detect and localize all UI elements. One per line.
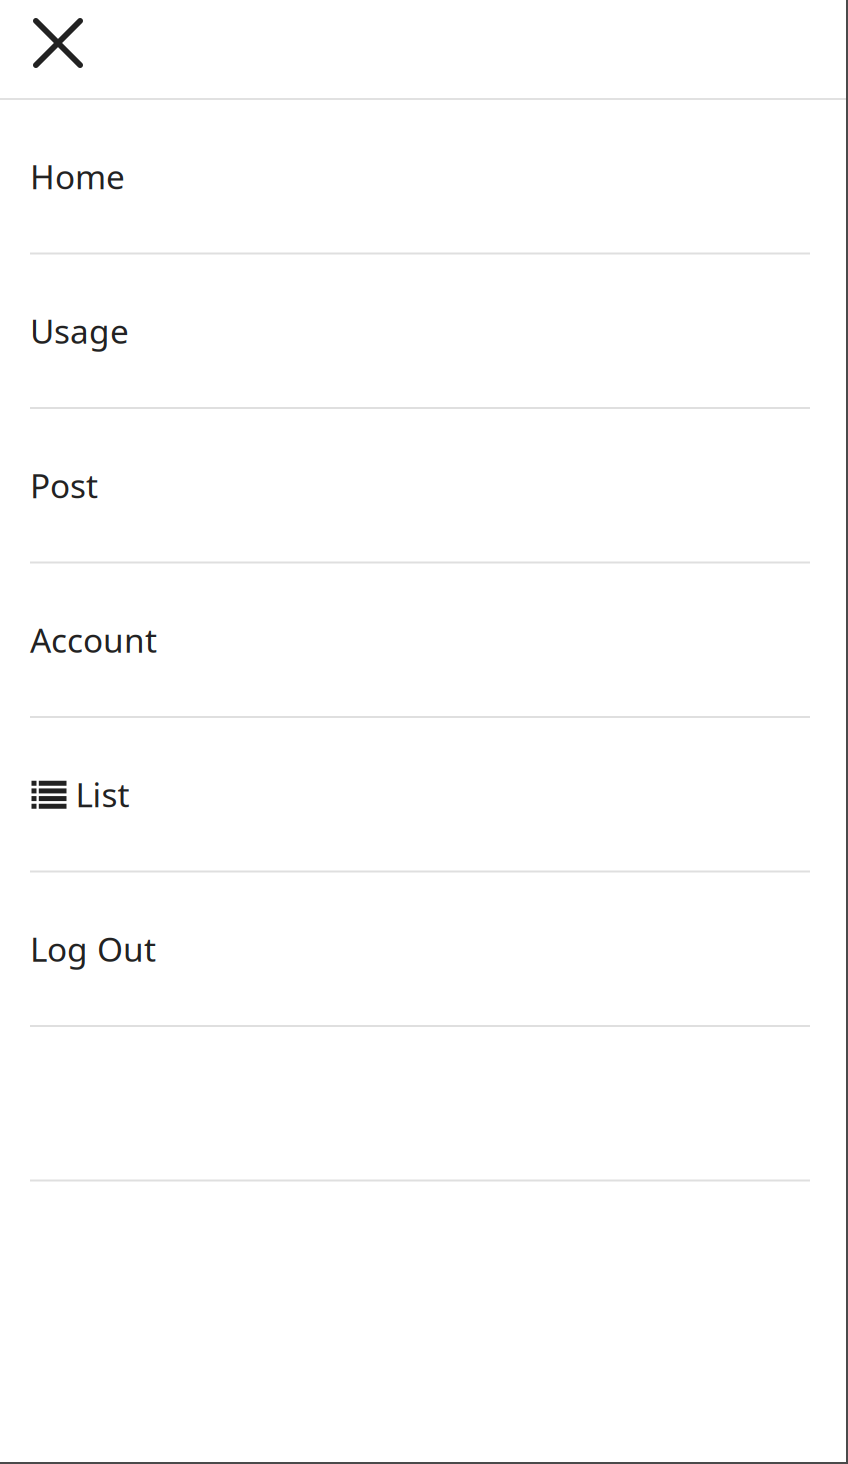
button[interactable]: List	[0, 718, 848, 872]
button[interactable]: Usage	[0, 254, 848, 409]
button[interactable]: Account	[0, 563, 848, 718]
staticText: Post	[30, 463, 98, 507]
staticText: Log Out	[30, 927, 156, 971]
staticText: Home	[30, 154, 125, 198]
staticText: Account	[30, 618, 157, 662]
button[interactable]: Post	[0, 409, 848, 563]
button[interactable]: Log Out	[0, 872, 848, 1027]
staticText: List	[75, 772, 129, 816]
staticText: Usage	[30, 309, 129, 353]
button[interactable]: Close	[0, 0, 848, 98]
button[interactable]: Home	[0, 100, 848, 254]
